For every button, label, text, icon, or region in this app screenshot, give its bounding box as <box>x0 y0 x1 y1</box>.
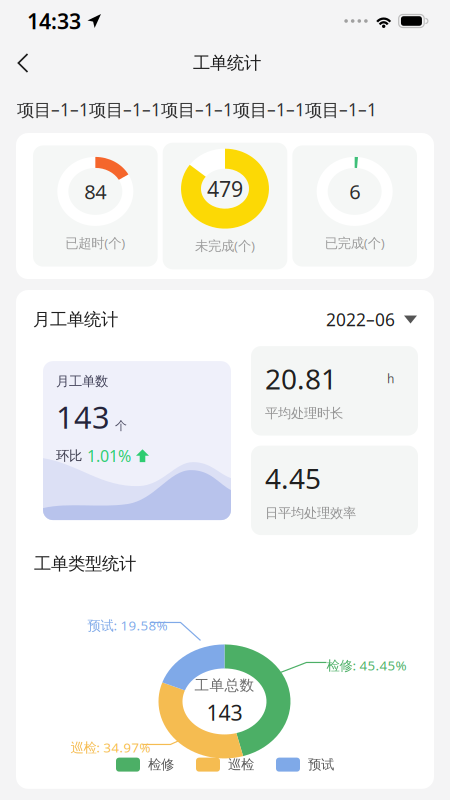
staticText: 已完成(个) <box>325 234 385 252</box>
staticText: h <box>387 371 394 387</box>
staticText: 环比 <box>56 448 82 464</box>
staticText: 已超时(个) <box>65 234 125 252</box>
staticText: 14:33 <box>27 7 81 35</box>
staticText: 预试 <box>308 756 334 773</box>
staticText: 4.45 <box>265 460 321 497</box>
staticText: 月工单数 <box>56 373 108 389</box>
staticText: 个 <box>115 418 127 433</box>
button[interactable]: Back <box>4 42 42 83</box>
staticText: 检修 <box>148 756 174 773</box>
staticText: 月工单统计 <box>33 309 118 330</box>
staticText: 工单统计 <box>193 52 261 74</box>
staticText: 1.01% <box>87 445 131 466</box>
staticText: 143 <box>206 698 242 727</box>
staticText: 20.81 <box>265 360 337 397</box>
staticText: 143 <box>56 396 110 437</box>
staticText: 479 <box>207 174 243 203</box>
staticText: 未完成(个) <box>195 237 255 254</box>
staticText: 预试: 19.58% <box>87 616 167 634</box>
staticText: 平均处理时长 <box>265 405 343 422</box>
staticText: 工单总数 <box>194 676 254 694</box>
staticText: 检修: 45.45% <box>326 656 406 674</box>
staticText: 84 <box>84 178 106 205</box>
staticText: 日平均处理效率 <box>265 505 356 521</box>
staticText: 巡检: 34.97% <box>70 738 150 756</box>
button[interactable]: 2022–06 <box>326 308 417 331</box>
staticText: 6 <box>349 178 360 205</box>
staticText: 巡检 <box>228 756 254 773</box>
staticText: 项目–1–1项目–1–1项目–1–1项目–1–1项目–1–1 <box>17 98 377 121</box>
staticText: 工单类型统计 <box>34 553 136 574</box>
staticText: 2022–06 <box>326 308 395 331</box>
